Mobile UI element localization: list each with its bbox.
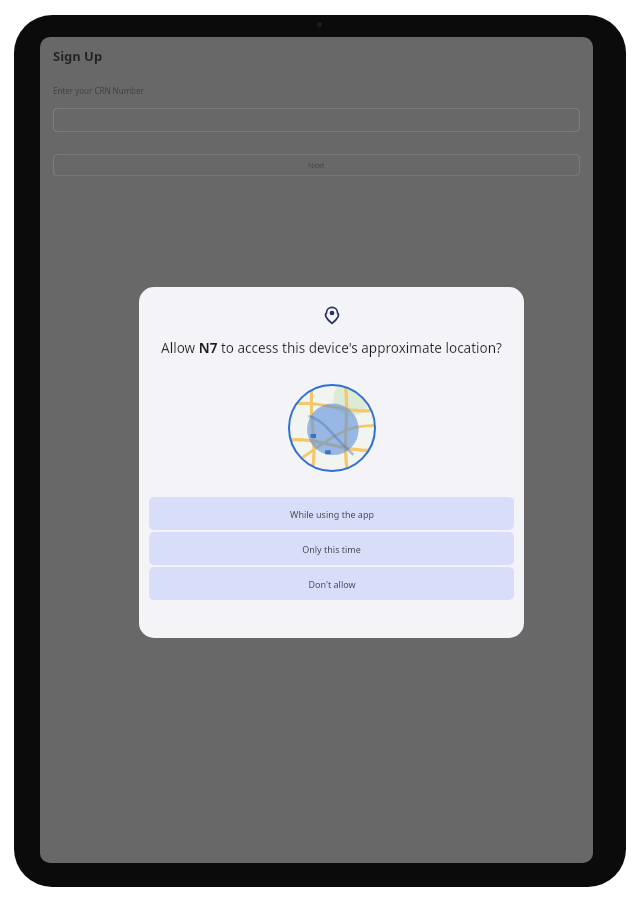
other: Location: [322, 305, 342, 325]
staticText: Next: [308, 160, 325, 170]
button[interactable]: Don't allow: [149, 567, 514, 600]
staticText: While using the app: [290, 508, 374, 520]
button[interactable]: Only this time: [149, 532, 514, 565]
staticText: Sign Up: [53, 47, 103, 65]
button[interactable]: [53, 108, 580, 132]
staticText: Only this time: [302, 543, 361, 555]
staticText: Don't allow: [308, 578, 356, 590]
staticText: Enter your CRN Number: [53, 85, 144, 96]
button[interactable]: Next: [53, 154, 580, 176]
staticText: Allow N7 to access this device's approxi…: [161, 339, 502, 357]
button[interactable]: While using the app: [149, 497, 514, 530]
